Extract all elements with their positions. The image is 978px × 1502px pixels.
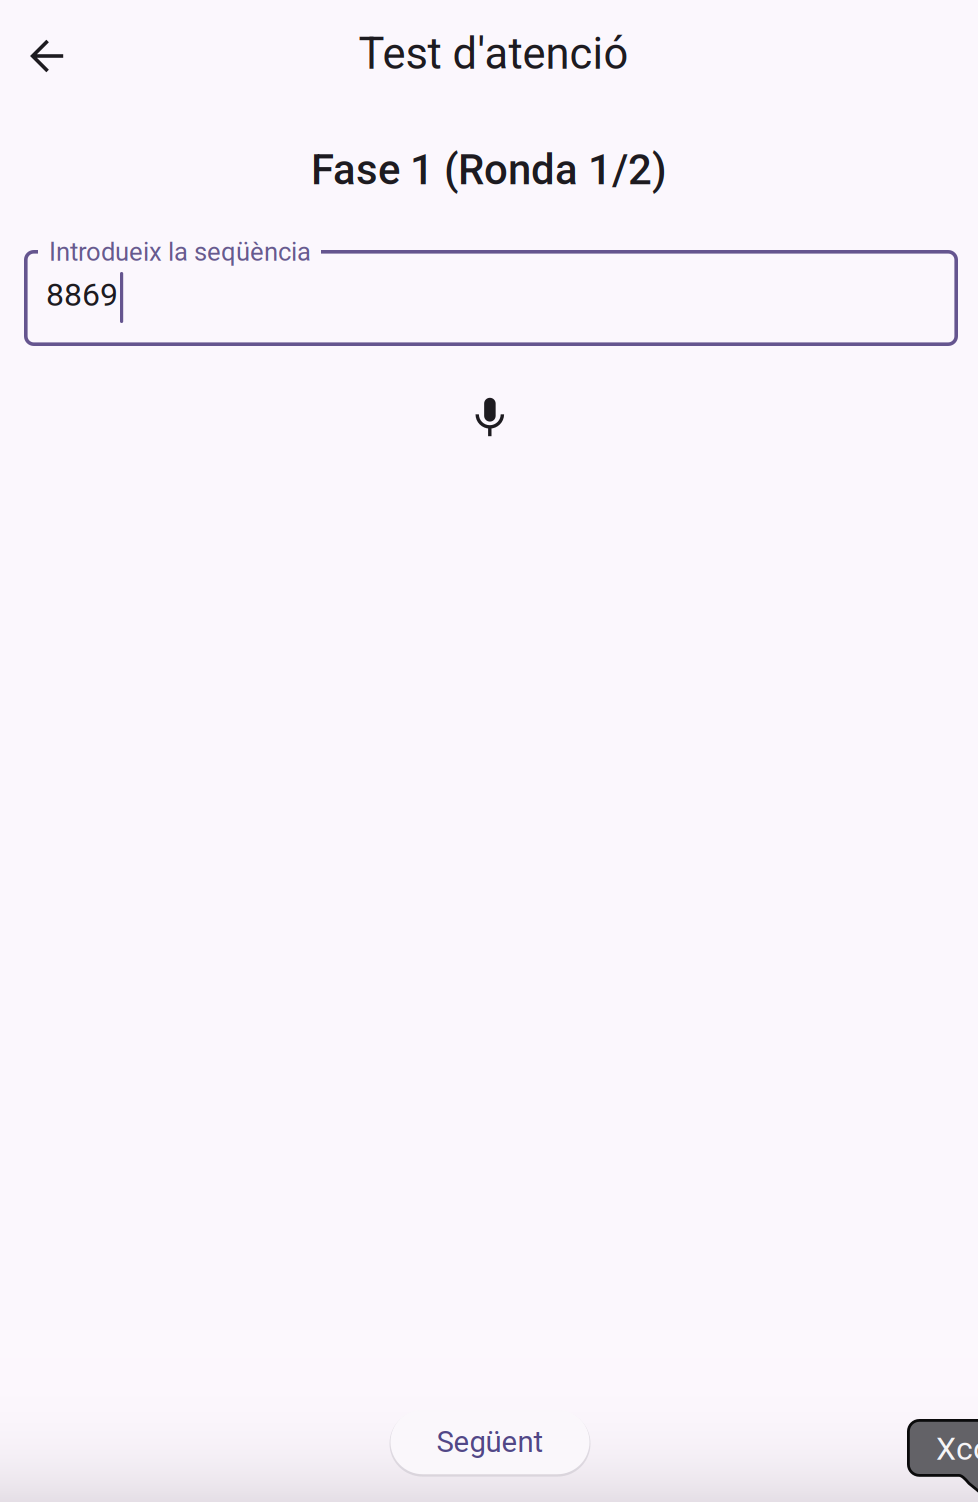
staticText: Següent [436,1425,543,1459]
staticText: Test d'atenció [358,28,628,79]
staticText: Xcode [936,1430,978,1467]
staticText: 8869 [46,276,118,313]
button[interactable]: Back [0,0,96,112]
staticText: Introdueix la seqüència [49,237,311,267]
button[interactable]: Microphone [448,376,532,460]
staticText: Fase 1 (Ronda 1/2) [311,145,667,195]
button[interactable]: Següent [388,1407,592,1477]
